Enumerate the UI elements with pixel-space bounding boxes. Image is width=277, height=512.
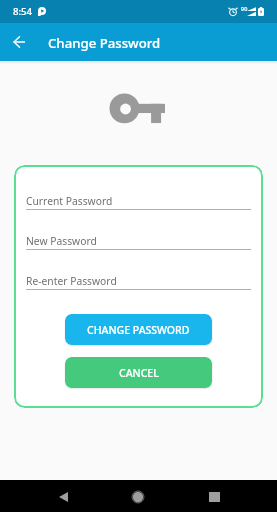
staticText: CHANGE PASSWORD xyxy=(87,323,190,337)
staticText: New Password xyxy=(26,234,97,248)
button[interactable]: CHANGE PASSWORD xyxy=(65,314,212,345)
button[interactable]: Home xyxy=(123,481,153,512)
staticText: CANCEL xyxy=(119,366,159,380)
staticText: 90 xyxy=(241,5,248,12)
staticText: Re-enter Password xyxy=(26,274,117,288)
button[interactable]: Back xyxy=(0,23,38,61)
staticText: Change Password xyxy=(48,34,161,52)
button[interactable]: Back xyxy=(48,481,78,512)
staticText: Current Password xyxy=(26,194,113,208)
staticText: 8:54 xyxy=(13,5,33,18)
button[interactable]: CANCEL xyxy=(65,357,212,388)
button[interactable]: Recent apps xyxy=(199,481,229,512)
